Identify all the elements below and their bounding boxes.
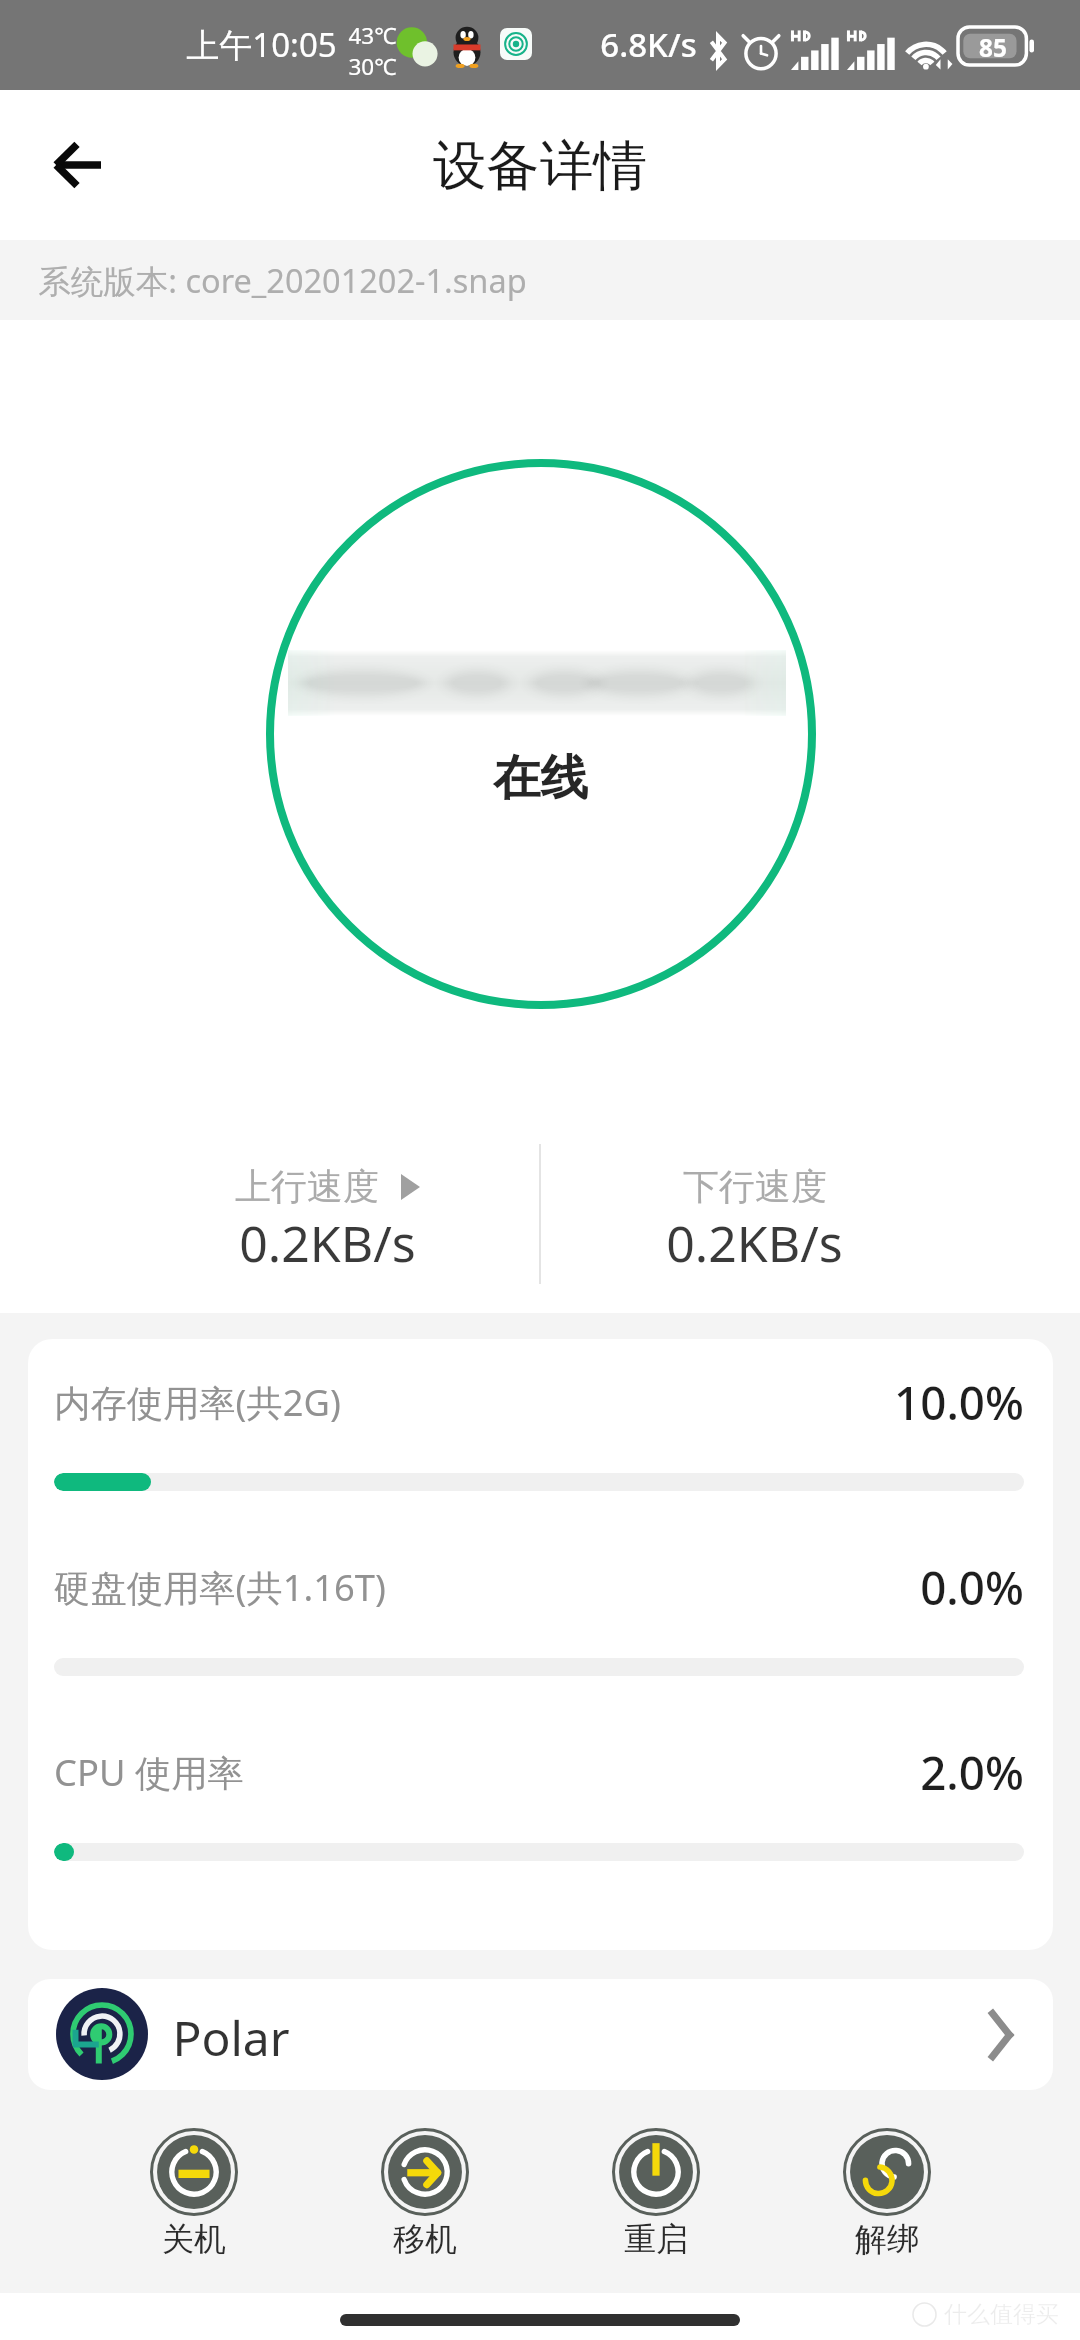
staticText: 关机	[162, 2219, 226, 2259]
button[interactable]: 移机	[359, 2118, 491, 2269]
staticText: 移机	[393, 2219, 457, 2259]
staticText: 设备详情	[433, 132, 647, 199]
staticText: 2.0%	[920, 1741, 1024, 1803]
staticText: CPU 使用率	[54, 1747, 244, 1797]
staticText: 6.8K/s	[600, 22, 697, 67]
button[interactable]: 关机	[128, 2118, 260, 2269]
button[interactable]: Back	[29, 117, 125, 213]
button[interactable]: 重启	[590, 2118, 722, 2269]
staticText: 在线	[493, 748, 588, 808]
staticText: 85	[979, 31, 1007, 64]
staticText: 上午10:05	[186, 22, 337, 67]
staticText: 解绑	[855, 2219, 919, 2259]
staticText: 什么值得买	[944, 2300, 1059, 2329]
staticText: 0.2KB/s	[666, 1209, 843, 1277]
staticText: 硬盘使用率(共1.16T)	[54, 1562, 386, 1612]
staticText: 43℃	[348, 20, 397, 51]
staticText: 0.0%	[920, 1556, 1024, 1618]
staticText: 内存使用率(共2G)	[54, 1377, 341, 1427]
staticText: 重启	[624, 2219, 688, 2259]
staticText: 10.0%	[894, 1371, 1024, 1433]
staticText: Polar	[172, 2005, 290, 2070]
staticText: 30℃	[348, 51, 397, 82]
staticText: 系统版本: core_20201202-1.snap	[38, 258, 527, 302]
button[interactable]: 解绑	[821, 2118, 953, 2269]
staticText: 下行速度	[683, 1164, 827, 1209]
staticText: 0.2KB/s	[239, 1209, 416, 1277]
button[interactable]: Polar	[28, 1979, 1053, 2090]
staticText: 上行速度	[235, 1164, 379, 1209]
